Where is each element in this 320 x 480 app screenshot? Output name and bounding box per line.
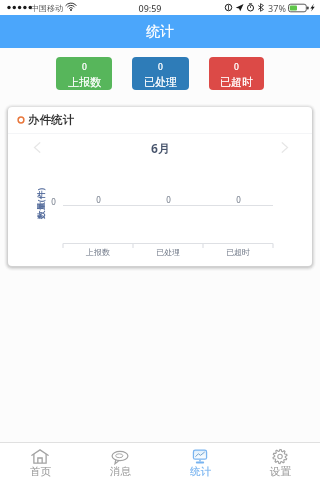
button[interactable]: 设置 — [240, 446, 320, 480]
staticText: 0 — [51, 196, 56, 207]
staticText: 上报数 — [68, 75, 101, 89]
button[interactable]: 0 — [209, 57, 264, 90]
staticText: 数量(件) — [34, 187, 45, 219]
staticText: 0 — [158, 61, 163, 73]
staticText: 0 — [234, 61, 239, 73]
staticText: 统计 — [146, 23, 174, 41]
staticText: 已超时 — [220, 75, 253, 89]
staticText: 消息 — [110, 465, 131, 478]
button[interactable]: 消息 — [80, 446, 160, 480]
button[interactable]: 0 — [56, 57, 112, 90]
button[interactable]: 首页 — [0, 446, 80, 480]
staticText: 0 — [236, 194, 241, 205]
staticText: 6月 — [151, 140, 170, 156]
staticText: 37% — [268, 2, 286, 14]
staticText: 上报数 — [86, 247, 110, 257]
staticText: 0 — [82, 61, 87, 73]
staticText: 已处理 — [156, 247, 180, 257]
staticText: 设置 — [270, 465, 291, 478]
button[interactable]: 0 — [132, 57, 189, 90]
staticText: 已超时 — [226, 247, 250, 257]
staticText: 统计 — [190, 465, 211, 478]
staticText: 09:59 — [138, 2, 162, 14]
button[interactable]: Previous month — [26, 135, 48, 159]
staticText: 首页 — [30, 465, 51, 478]
staticText: 中国移动 — [31, 3, 63, 13]
staticText: 办件统计 — [28, 113, 74, 127]
staticText: 已处理 — [144, 75, 177, 89]
staticText: 0 — [96, 194, 101, 205]
staticText: 0 — [166, 194, 171, 205]
button[interactable]: Next month — [274, 135, 296, 159]
button[interactable]: 统计 — [160, 446, 240, 480]
